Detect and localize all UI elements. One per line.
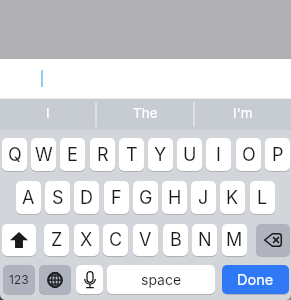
staticText: A — [22, 187, 35, 209]
staticText: space — [141, 271, 182, 288]
button[interactable]: K — [220, 181, 245, 214]
button[interactable] — [39, 265, 71, 294]
button[interactable]: space — [107, 265, 215, 294]
button[interactable]: Done — [222, 265, 289, 294]
staticText: The — [133, 105, 158, 121]
staticText: W — [35, 144, 53, 166]
staticText: 123 — [9, 272, 29, 287]
button[interactable]: M — [222, 224, 247, 256]
button[interactable]: V — [133, 224, 158, 256]
button[interactable]: C — [103, 224, 128, 256]
staticText: E — [67, 144, 78, 166]
staticText: M — [226, 229, 243, 251]
button[interactable] — [76, 265, 103, 294]
staticText: L — [257, 187, 268, 209]
button[interactable]: I — [206, 138, 231, 171]
button[interactable] — [256, 224, 290, 256]
button[interactable]: X — [74, 224, 99, 256]
button[interactable]: F — [104, 181, 129, 214]
staticText: I — [46, 105, 50, 121]
button[interactable]: N — [192, 224, 217, 256]
button[interactable]: A — [16, 181, 41, 214]
button[interactable]: Z — [44, 224, 69, 256]
staticText: S — [52, 187, 64, 209]
button[interactable]: Y — [148, 138, 173, 171]
staticText: N — [198, 229, 212, 251]
staticText: Z — [51, 229, 63, 251]
staticText: O — [242, 144, 256, 166]
staticText: Done — [237, 271, 274, 289]
button[interactable]: P — [265, 138, 290, 171]
button[interactable]: W — [31, 138, 56, 171]
staticText: U — [183, 144, 197, 166]
button[interactable]: J — [191, 181, 216, 214]
staticText: I'm — [233, 105, 253, 121]
staticText: H — [168, 187, 182, 209]
staticText: K — [226, 187, 239, 209]
staticText: V — [139, 229, 152, 251]
button[interactable]: B — [163, 224, 188, 256]
button[interactable]: T — [119, 138, 144, 171]
button[interactable]: I'm — [195, 99, 291, 130]
staticText: B — [170, 229, 182, 251]
staticText: Y — [154, 144, 167, 166]
staticText: C — [109, 229, 123, 251]
staticText: T — [126, 144, 138, 166]
button[interactable]: L — [250, 181, 275, 214]
button[interactable]: E — [60, 138, 85, 171]
button[interactable]: U — [177, 138, 202, 171]
staticText: F — [111, 187, 122, 209]
staticText: D — [80, 187, 93, 209]
button[interactable] — [2, 224, 36, 256]
button[interactable]: 123 — [3, 265, 35, 294]
button[interactable]: The — [97, 99, 193, 130]
staticText: J — [198, 187, 209, 209]
button[interactable]: S — [45, 181, 70, 214]
button[interactable]: R — [90, 138, 115, 171]
button[interactable]: G — [133, 181, 158, 214]
button[interactable]: O — [236, 138, 261, 171]
button[interactable]: Q — [2, 138, 27, 171]
staticText: G — [139, 187, 153, 209]
button[interactable] — [0, 59, 291, 99]
staticText: R — [97, 144, 109, 166]
button[interactable]: D — [74, 181, 99, 214]
staticText: P — [272, 144, 284, 166]
staticText: I — [216, 144, 221, 166]
staticText: Q — [8, 144, 22, 166]
staticText: X — [80, 229, 93, 251]
button[interactable]: H — [162, 181, 187, 214]
button[interactable]: I — [0, 99, 95, 130]
